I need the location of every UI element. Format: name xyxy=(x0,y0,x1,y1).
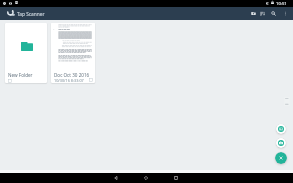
staticText: New Folder xyxy=(8,72,33,78)
button[interactable]: Doc Oct 30 2016 xyxy=(51,23,95,83)
staticText: 10:51 xyxy=(276,1,287,7)
staticText: 10/30/16 8:33:07 xyxy=(54,78,84,83)
button[interactable]: Import from gallery xyxy=(276,124,286,134)
button[interactable]: New Folder xyxy=(5,23,47,83)
button[interactable]: Sort xyxy=(257,7,268,20)
button[interactable]: Close menu xyxy=(275,152,287,164)
button[interactable]: Recents xyxy=(170,173,182,183)
button[interactable]: Search xyxy=(268,7,279,20)
button[interactable]: Camera xyxy=(276,138,286,148)
button[interactable]: Home xyxy=(140,173,152,183)
staticText: Tap Scanner xyxy=(17,11,45,18)
button[interactable]: Back xyxy=(110,173,122,183)
button[interactable]: New folder xyxy=(248,7,259,20)
staticText: Doc Oct 30 2016 xyxy=(54,72,90,78)
button[interactable]: More options xyxy=(280,7,291,20)
